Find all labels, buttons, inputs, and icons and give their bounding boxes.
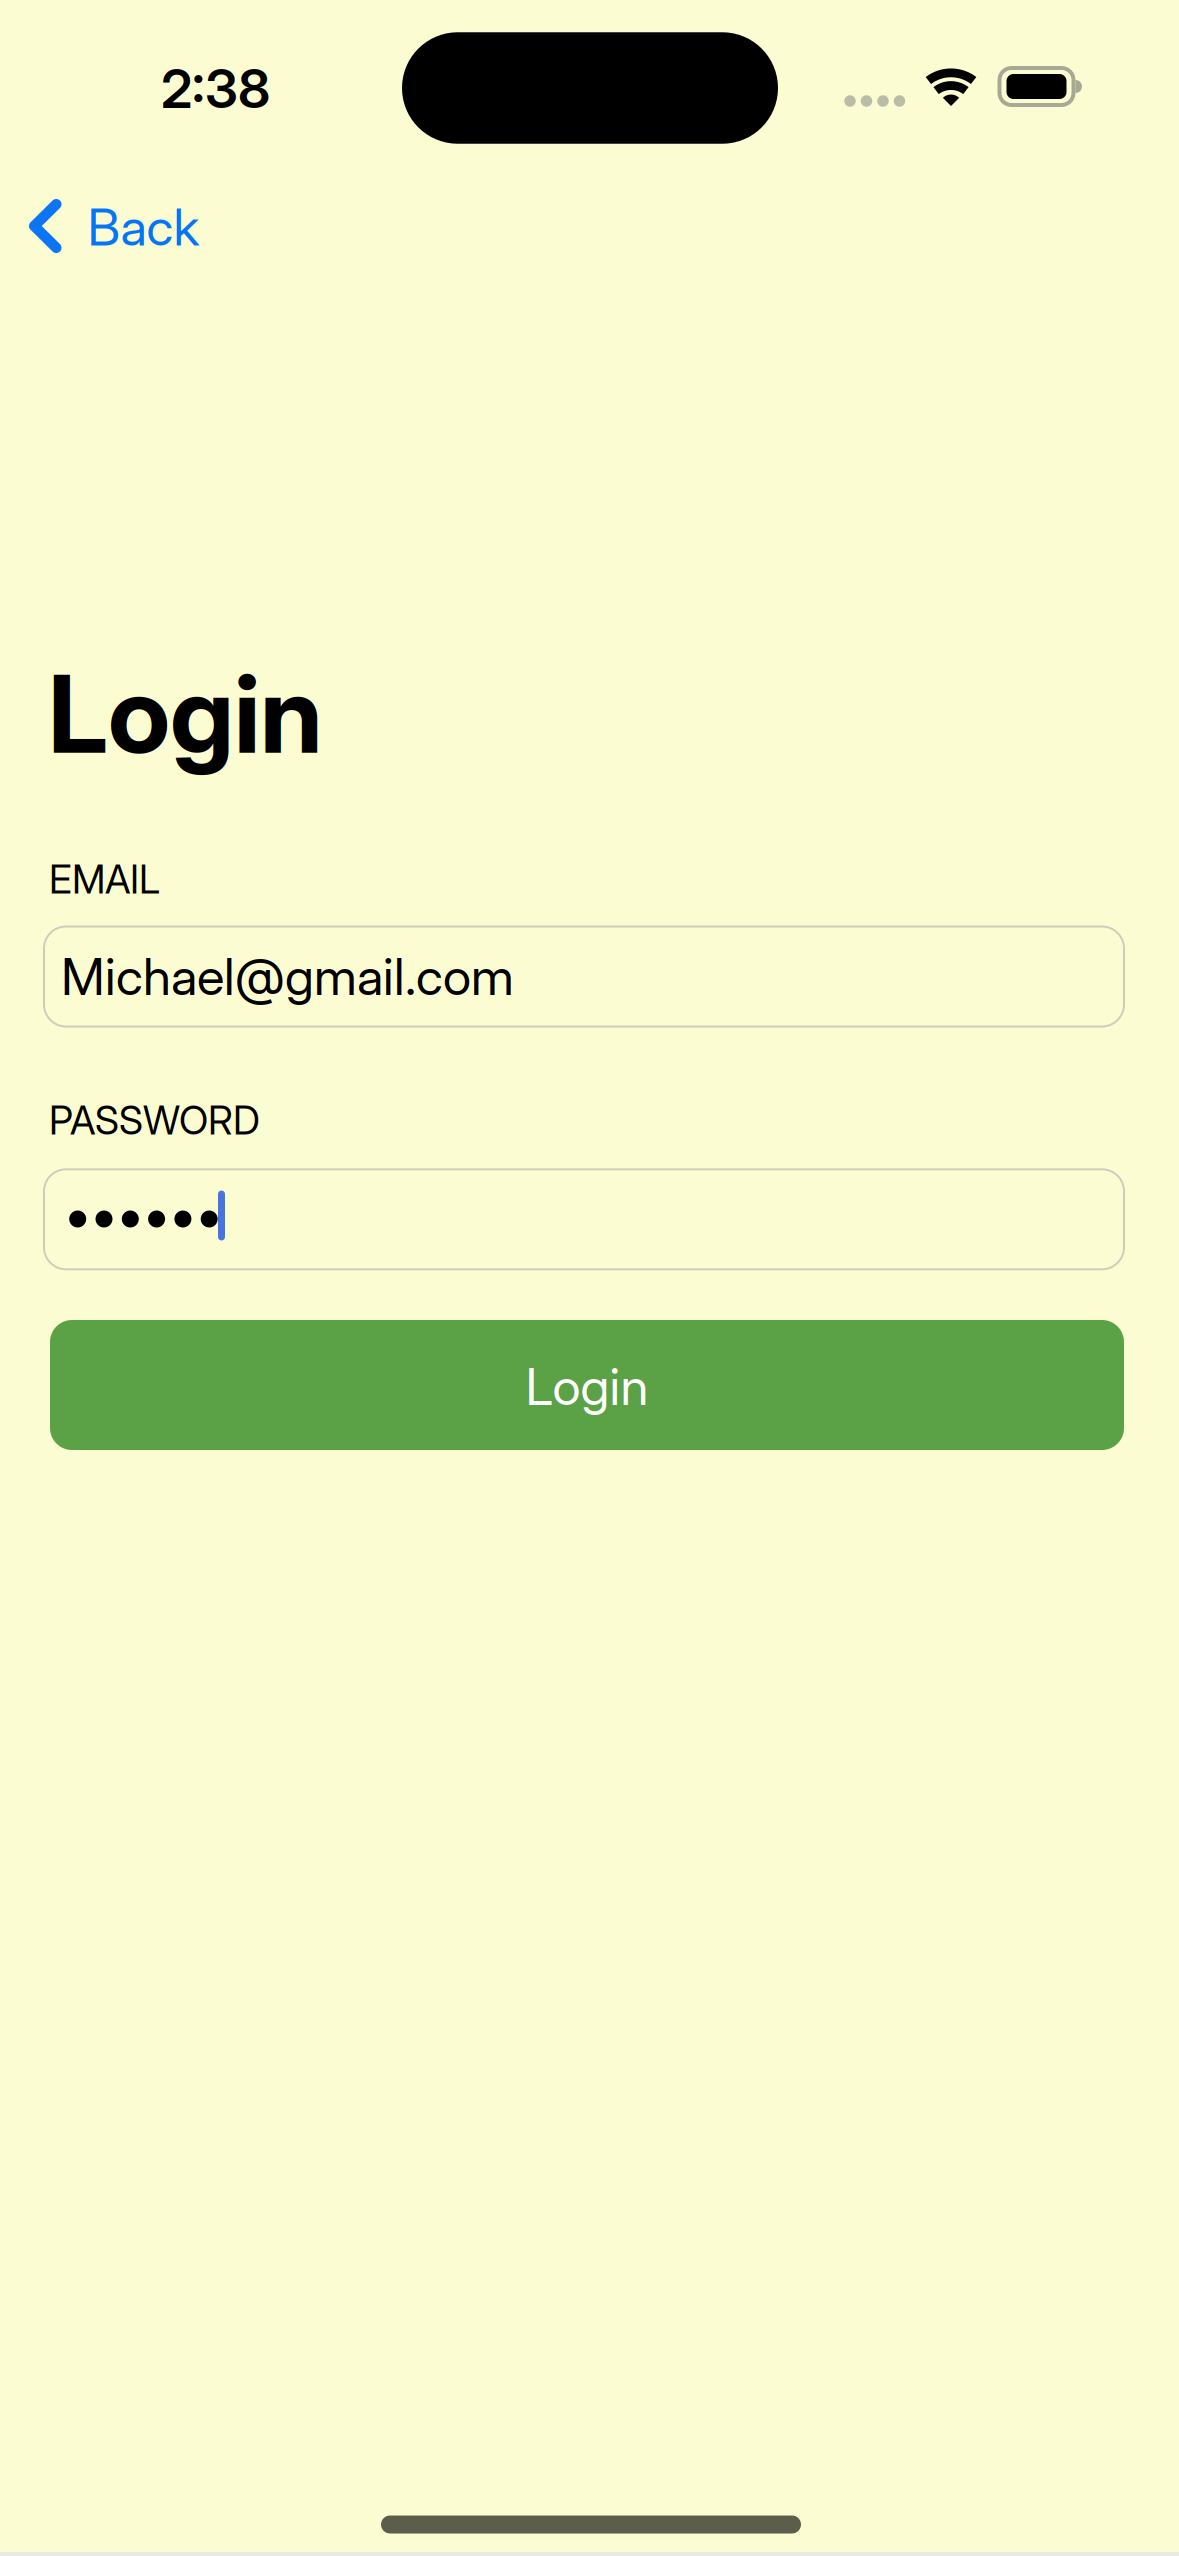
staticText: PASSWORD <box>49 1097 260 1144</box>
secureTextField[interactable]: •••••• <box>44 1188 1124 1250</box>
staticText: Login <box>525 1356 648 1417</box>
staticText: Michael@gmail.com <box>44 946 497 1007</box>
staticText: EMAIL <box>49 856 160 903</box>
staticText: 2:38 <box>161 56 270 121</box>
staticText: Michael@gmail.com <box>61 946 514 1007</box>
staticText: Login <box>48 649 323 778</box>
button[interactable]: Back <box>29 196 205 258</box>
button[interactable]: Login <box>50 1320 1124 1450</box>
staticText: •••••• <box>44 1188 200 1250</box>
staticText: Back <box>87 196 199 258</box>
textField[interactable]: Michael@gmail.com <box>44 946 1124 1007</box>
